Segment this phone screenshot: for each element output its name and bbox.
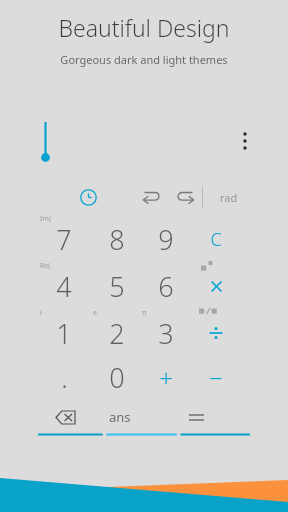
staticText: 3 — [158, 315, 174, 352]
button[interactable]: Multiply — [198, 265, 234, 307]
staticText: i — [40, 308, 42, 318]
staticText: ans — [109, 408, 131, 426]
staticText: 7 — [56, 221, 72, 258]
staticText: 4 — [56, 268, 72, 305]
staticText: 6 — [158, 268, 174, 305]
button[interactable]: 1 — [46, 312, 82, 354]
button[interactable]: 7 — [46, 218, 82, 260]
button[interactable]: ans — [100, 402, 140, 432]
button[interactable]: − — [198, 356, 234, 398]
button[interactable]: rad — [208, 182, 250, 212]
button[interactable]: More options — [232, 124, 258, 154]
staticText: Gorgeous dark and light themes — [60, 52, 228, 67]
staticText: π — [142, 308, 147, 318]
staticText: 2 — [109, 315, 125, 352]
staticText: C — [210, 227, 222, 252]
staticText: + — [159, 361, 173, 394]
staticText: e — [93, 308, 97, 318]
button[interactable]: . — [46, 356, 82, 398]
button[interactable]: 4 — [46, 265, 82, 307]
staticText: . — [61, 359, 68, 396]
button[interactable]: Equals — [178, 402, 214, 432]
staticText: Beautiful Design — [58, 12, 230, 43]
staticText: 8 — [109, 221, 125, 258]
button[interactable]: + — [148, 356, 184, 398]
staticText: Im( — [40, 214, 52, 224]
button[interactable]: 0 — [99, 356, 135, 398]
button[interactable]: 6 — [148, 265, 184, 307]
staticText: 5 — [109, 268, 125, 305]
button[interactable]: Divide — [198, 312, 234, 354]
staticText: 0 — [109, 359, 125, 396]
button[interactable]: 9 — [148, 218, 184, 260]
button[interactable]: C — [198, 218, 234, 260]
button[interactable]: 5 — [99, 265, 135, 307]
staticText: 9 — [158, 221, 174, 258]
button[interactable]: Undo — [135, 182, 167, 212]
button[interactable]: Redo — [170, 182, 202, 212]
staticText: 1 — [56, 315, 72, 352]
staticText: − — [209, 361, 223, 394]
button[interactable]: Backspace — [48, 402, 82, 432]
button[interactable]: 2 — [99, 312, 135, 354]
button[interactable]: 8 — [99, 218, 135, 260]
button[interactable]: 3 — [148, 312, 184, 354]
staticText: rad — [220, 190, 238, 205]
button[interactable]: History — [72, 182, 104, 212]
staticText: Re( — [40, 261, 51, 271]
